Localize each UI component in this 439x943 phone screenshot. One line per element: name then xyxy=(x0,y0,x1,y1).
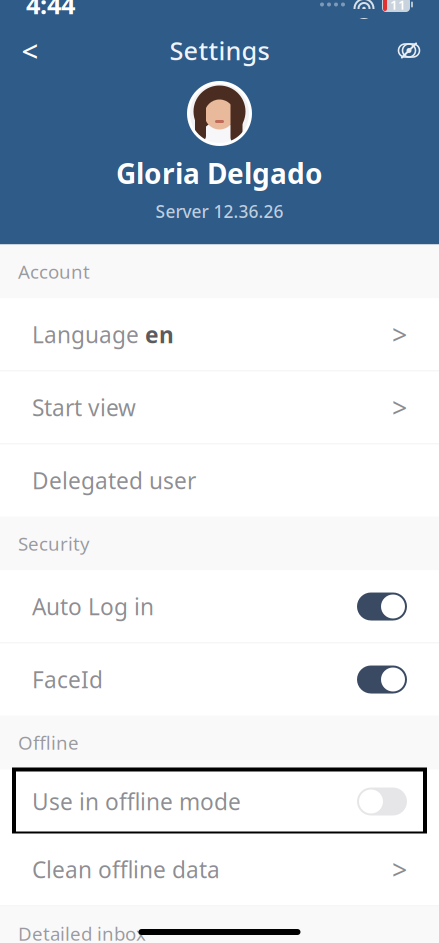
button[interactable]: Back xyxy=(8,28,52,72)
button[interactable]: Language xyxy=(0,298,439,370)
button[interactable]: Auto Log in xyxy=(0,570,439,642)
staticText: Detailed inbox xyxy=(18,921,146,943)
button[interactable]: Delegated user xyxy=(0,444,439,516)
staticText: Gloria Delgado xyxy=(116,154,323,192)
staticText: Auto Log in xyxy=(32,591,154,621)
staticText: Offline xyxy=(18,730,79,755)
staticText: 4:44 xyxy=(26,0,75,21)
staticText: Language xyxy=(32,319,139,349)
staticText: Security xyxy=(18,531,90,556)
staticText: 11 xyxy=(390,0,406,13)
staticText: FaceId xyxy=(32,664,103,694)
staticText: > xyxy=(392,317,407,352)
button[interactable]: FaceId xyxy=(0,643,439,715)
staticText: Settings xyxy=(169,34,269,67)
button[interactable]: Use in offline mode xyxy=(0,769,439,833)
button[interactable]: Start view xyxy=(0,371,439,443)
staticText: Server 12.36.26 xyxy=(155,200,283,223)
staticText: Start view xyxy=(32,392,136,422)
staticText: > xyxy=(392,852,407,887)
button[interactable]: Hide details xyxy=(387,28,431,72)
staticText: < xyxy=(21,31,38,70)
staticText: Account xyxy=(18,259,90,284)
staticText: Delegated user xyxy=(32,465,196,495)
staticText: en xyxy=(145,319,174,349)
staticText: > xyxy=(392,390,407,425)
button[interactable]: Clean offline data xyxy=(0,833,439,905)
staticText: Use in offline mode xyxy=(32,786,241,816)
staticText: Clean offline data xyxy=(32,854,220,884)
